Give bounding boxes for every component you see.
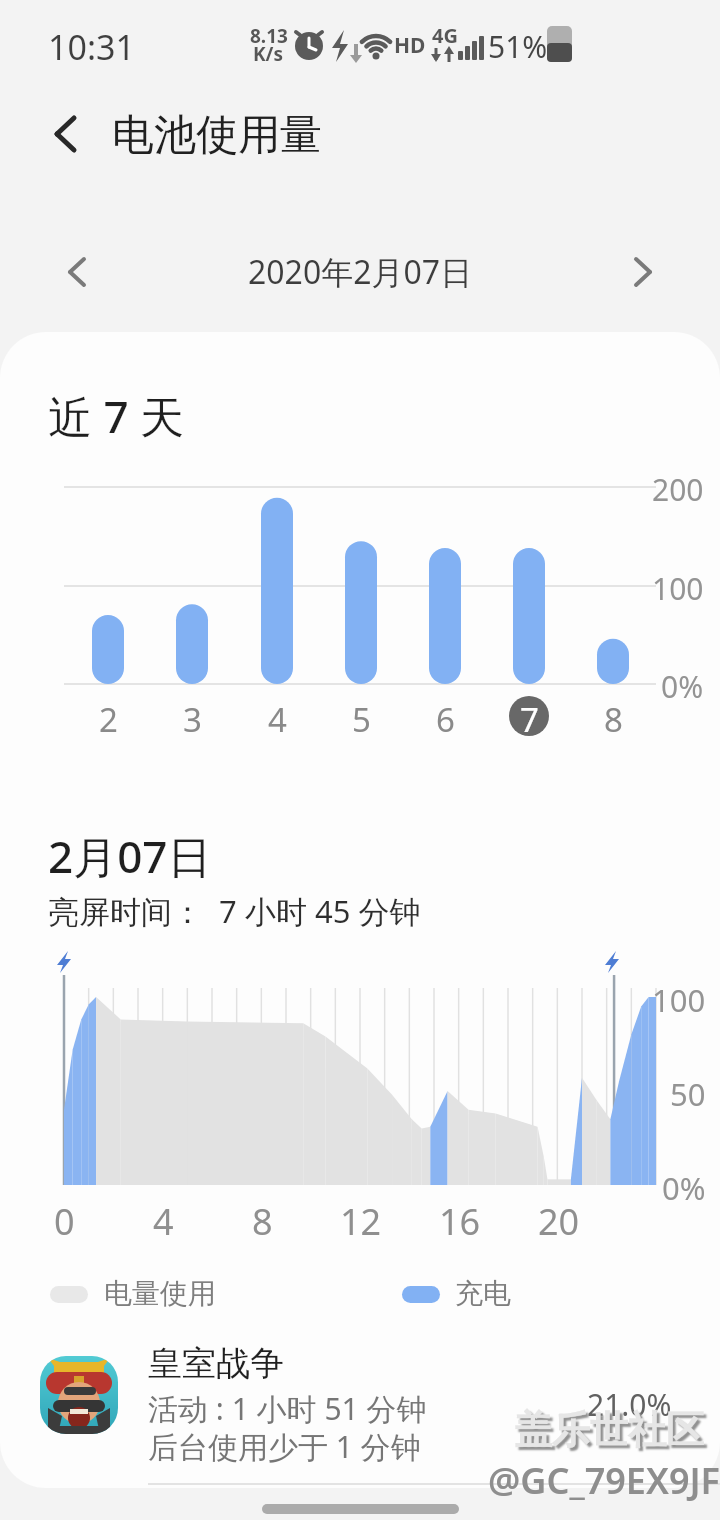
staticText: 21.0% bbox=[587, 1384, 672, 1425]
button[interactable] bbox=[0, 1336, 720, 1466]
staticText: 7 bbox=[520, 697, 539, 742]
staticText: 后台使用少于 1 分钟 bbox=[148, 1426, 421, 1467]
staticText: 8 bbox=[604, 697, 623, 742]
staticText: 0% bbox=[661, 666, 704, 707]
staticText: 皇室战争 bbox=[148, 1342, 284, 1385]
staticText: 4 bbox=[268, 697, 287, 742]
staticText: 51% bbox=[488, 26, 548, 67]
staticText: 5 bbox=[352, 697, 371, 742]
staticText: 活动 : 1 小时 51 分钟 bbox=[148, 1388, 427, 1429]
staticText: 20 bbox=[538, 1197, 580, 1246]
staticText: 电池使用量 bbox=[112, 109, 322, 162]
staticText: 充电 bbox=[455, 1276, 511, 1311]
staticText: 50 bbox=[670, 1073, 706, 1115]
staticText: 0 bbox=[54, 1197, 75, 1246]
staticText: 200 bbox=[652, 469, 704, 510]
button[interactable] bbox=[36, 104, 96, 164]
button[interactable] bbox=[50, 244, 106, 300]
staticText: 12 bbox=[340, 1197, 382, 1246]
staticText: 2月07日 bbox=[48, 826, 212, 886]
staticText: 盖乐世社区 bbox=[514, 1406, 704, 1454]
staticText: 电量使用 bbox=[104, 1276, 216, 1311]
staticText: 2020年2月07日 bbox=[248, 250, 473, 294]
staticText: 10:31 bbox=[48, 24, 135, 70]
staticText: 3 bbox=[183, 697, 202, 742]
staticText: 4 bbox=[153, 1197, 174, 1246]
staticText: 0% bbox=[662, 1167, 706, 1209]
staticText: 8 bbox=[252, 1197, 273, 1246]
button[interactable] bbox=[262, 1504, 459, 1514]
staticText: 6 bbox=[436, 697, 455, 742]
staticText: 100 bbox=[652, 979, 706, 1021]
button[interactable] bbox=[616, 244, 672, 300]
staticText: 16 bbox=[439, 1197, 481, 1246]
staticText: HD bbox=[394, 31, 426, 60]
staticText: 2 bbox=[99, 697, 118, 742]
staticText: @GC_79EX9JF bbox=[488, 1456, 720, 1505]
staticText: K/s bbox=[253, 41, 284, 67]
staticText: 8.13 bbox=[250, 23, 288, 49]
staticText: 100 bbox=[652, 568, 704, 609]
staticText: 4G bbox=[432, 22, 458, 49]
staticText: 近 7 天 bbox=[48, 386, 185, 446]
staticText: 亮屏时间： 7 小时 45 分钟 bbox=[48, 890, 421, 932]
